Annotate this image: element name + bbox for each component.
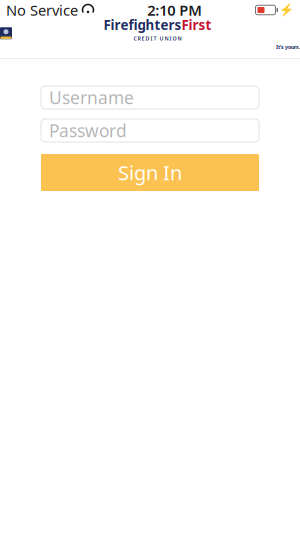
button[interactable]: Username — [41, 86, 259, 109]
staticText: 2:10 PM — [147, 0, 202, 20]
staticText: Password — [49, 119, 127, 142]
staticText: Sign In — [118, 159, 182, 186]
staticText: It's yours. — [276, 43, 300, 50]
staticText: Username — [49, 86, 134, 109]
staticText: C R E D I T U N I O N — [133, 35, 181, 42]
staticText: Firefighters — [103, 16, 181, 34]
button[interactable]: Password — [41, 119, 259, 142]
staticText: First — [181, 16, 211, 34]
staticText: ⚡ — [279, 3, 294, 17]
staticText: No Service — [6, 0, 78, 20]
button[interactable]: Sign In — [41, 154, 259, 191]
